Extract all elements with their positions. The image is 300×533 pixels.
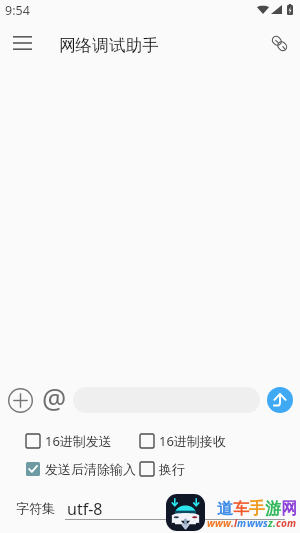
staticText: 网络调试助手 — [59, 35, 159, 56]
staticText: 游 — [265, 499, 281, 519]
staticText: o — [281, 516, 287, 530]
button[interactable]: 16进制接收 — [135, 428, 232, 453]
staticText: 9:54 — [5, 2, 30, 19]
staticText: 字符集 — [16, 500, 55, 516]
staticText: c — [276, 516, 281, 530]
staticText: w — [215, 516, 223, 530]
staticText: . — [273, 516, 276, 530]
staticText: 发送后清除输入 — [45, 461, 136, 477]
button[interactable]: 16进制发送 — [21, 428, 118, 453]
button[interactable]: 发送后清除输入 — [21, 456, 142, 481]
staticText: l — [234, 516, 237, 530]
staticText: 换行 — [159, 461, 185, 477]
staticText: z — [268, 516, 273, 530]
staticText: utf-8 — [67, 498, 103, 520]
staticText: . — [231, 516, 234, 530]
staticText: 手 — [249, 499, 265, 519]
staticText: w — [207, 516, 215, 530]
staticText: 车 — [233, 499, 249, 519]
staticText: 网 — [281, 499, 297, 519]
button[interactable]: Add — [4, 384, 36, 416]
button[interactable]: Link — [264, 28, 295, 59]
button[interactable]: Send — [267, 387, 293, 413]
staticText: m — [287, 516, 297, 530]
staticText: m — [237, 516, 247, 530]
button[interactable]: 换行 — [135, 456, 191, 481]
button[interactable]: Email — [38, 380, 70, 412]
staticText: @ — [42, 380, 67, 412]
staticText: w — [255, 516, 263, 530]
staticText: 道 — [217, 499, 233, 519]
staticText: 16进制发送 — [45, 432, 112, 450]
staticText: w — [247, 516, 255, 530]
staticText: w — [223, 516, 231, 530]
button[interactable]: Menu — [7, 27, 38, 58]
staticText: s — [263, 516, 268, 530]
staticText: 16进制接收 — [159, 432, 226, 450]
